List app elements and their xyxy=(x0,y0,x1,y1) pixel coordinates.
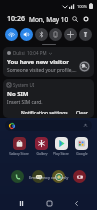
button[interactable]: Back xyxy=(69,196,83,210)
staticText: Galaxy Store xyxy=(9,151,29,156)
staticText: 10:26 xyxy=(7,14,25,24)
staticText: Someone visited your profile, click to s… xyxy=(7,67,77,74)
button[interactable]: Sound xyxy=(20,28,33,41)
staticText: Mon, May 10 xyxy=(29,15,69,24)
staticText: 10:04 PM xyxy=(27,50,47,56)
staticText: Google xyxy=(76,151,88,156)
button[interactable]: Phone xyxy=(11,170,24,183)
button[interactable]: Browser xyxy=(52,170,65,183)
staticText: Emergency calls only xyxy=(29,175,69,180)
button[interactable]: Flashlight xyxy=(79,28,92,41)
button[interactable]: Search xyxy=(69,13,81,25)
staticText: Play Store xyxy=(53,151,69,156)
button[interactable]: System UI xyxy=(3,79,94,118)
button[interactable]: Gallery xyxy=(35,137,48,156)
staticText: 100% xyxy=(77,4,88,9)
staticText: You have new visitor xyxy=(7,58,69,66)
button[interactable]: Home xyxy=(42,196,56,210)
button[interactable]: Google xyxy=(75,137,88,156)
button[interactable]: Auto rotate xyxy=(49,28,62,41)
button[interactable] xyxy=(5,120,92,131)
button[interactable]: Airplane mode xyxy=(64,28,77,41)
button[interactable]: Wi-Fi xyxy=(5,28,18,41)
staticText: Dulisi xyxy=(13,50,25,56)
button[interactable]: Galaxy Store xyxy=(9,137,29,156)
button[interactable]: Recents xyxy=(14,196,28,210)
staticText: System UI xyxy=(13,82,35,88)
button[interactable]: Bluetooth xyxy=(35,28,48,41)
staticText: Gallery xyxy=(36,151,48,156)
button[interactable]: Clear xyxy=(74,109,90,115)
button[interactable]: Notification settings xyxy=(19,109,70,115)
button[interactable]: Camera xyxy=(73,170,86,183)
button[interactable]: Dulisi xyxy=(3,47,94,77)
staticText: No SIM xyxy=(7,90,29,98)
button[interactable]: Messages xyxy=(32,170,45,183)
button[interactable]: Play Store xyxy=(53,137,69,156)
staticText: Notification settings xyxy=(21,110,68,114)
staticText: Clear xyxy=(76,110,88,114)
button[interactable]: Settings xyxy=(82,13,90,25)
staticText: Insert SIM card. xyxy=(7,99,43,106)
